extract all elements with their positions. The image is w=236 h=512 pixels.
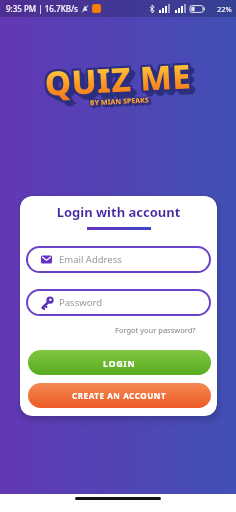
staticText: QUIZ ME: [49, 56, 198, 108]
staticText: BY MIAN SPEAKS: [93, 97, 152, 110]
staticText: QUIZ ME: [46, 51, 195, 104]
staticText: QUIZ ME: [46, 55, 195, 108]
button[interactable]: CREATE AN ACCOUNT: [28, 383, 211, 408]
staticText: QUIZ ME: [48, 57, 197, 110]
staticText: QUIZ ME: [48, 55, 197, 108]
button[interactable]: Email Address: [26, 246, 211, 273]
staticText: QUIZ ME: [44, 51, 193, 104]
staticText: QUIZ ME: [46, 57, 195, 110]
staticText: 9:35 PM | 16.7KB/s: [6, 3, 78, 14]
staticText: BY MIAN SPEAKS: [91, 97, 150, 110]
staticText: BY MIAN SPEAKS: [90, 94, 149, 107]
staticText: QUIZ ME: [47, 56, 196, 109]
staticText: QUIZ ME: [44, 55, 193, 108]
staticText: BY MIAN SPEAKS: [91, 96, 150, 109]
staticText: Email Address: [59, 253, 122, 266]
staticText: BY MIAN SPEAKS: [92, 98, 151, 111]
staticText: QUIZ ME: [42, 55, 191, 108]
staticText: QUIZ ME: [42, 53, 191, 106]
staticText: BY MIAN SPEAKS: [89, 94, 148, 108]
staticText: CREATE AN ACCOUNT: [72, 390, 167, 401]
staticText: BY MIAN SPEAKS: [89, 95, 148, 109]
button[interactable]: Forgot your password?: [20, 325, 217, 335]
staticText: QUIZ ME: [50, 57, 199, 109]
staticText: Forgot your password?: [115, 325, 196, 335]
button[interactable]: LOGIN: [28, 350, 211, 375]
button[interactable]: Password: [26, 289, 211, 316]
staticText: BY MIAN SPEAKS: [91, 95, 150, 108]
staticText: LOGIN: [103, 357, 136, 369]
staticText: QUIZ ME: [47, 58, 196, 111]
staticText: BY MIAN SPEAKS: [91, 94, 150, 107]
staticText: 22%: [217, 4, 232, 14]
staticText: QUIZ ME: [46, 53, 195, 106]
staticText: BY MIAN SPEAKS: [89, 96, 148, 110]
staticText: Password: [59, 296, 102, 309]
staticText: BY MIAN SPEAKS: [92, 97, 151, 110]
staticText: BY MIAN SPEAKS: [90, 95, 149, 108]
staticText: BY MIAN SPEAKS: [91, 96, 150, 109]
staticText: QUIZ ME: [44, 53, 193, 106]
staticText: BY MIAN SPEAKS: [90, 96, 149, 109]
staticText: BY MIAN SPEAKS: [92, 96, 151, 109]
staticText: Login with account: [20, 203, 217, 221]
staticText: QUIZ ME: [42, 51, 191, 104]
staticText: QUIZ ME: [46, 55, 195, 108]
staticText: QUIZ ME: [48, 59, 197, 112]
